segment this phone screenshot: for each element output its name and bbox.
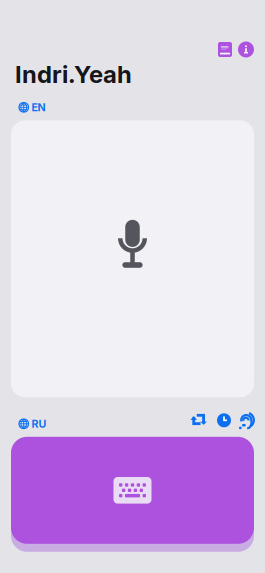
button[interactable]: EN xyxy=(19,100,45,114)
button[interactable]: About xyxy=(238,41,254,57)
button[interactable]: Keyboard input xyxy=(11,437,254,544)
staticText: Indri.Yeah xyxy=(15,60,132,88)
staticText: RU xyxy=(31,417,46,430)
button[interactable]: Swap languages xyxy=(190,411,207,429)
staticText: EN xyxy=(31,101,45,114)
button[interactable]: RU xyxy=(19,417,46,431)
button[interactable]: Listen xyxy=(238,411,256,429)
button[interactable]: Dictionary xyxy=(217,41,233,58)
button[interactable]: History xyxy=(217,411,231,429)
